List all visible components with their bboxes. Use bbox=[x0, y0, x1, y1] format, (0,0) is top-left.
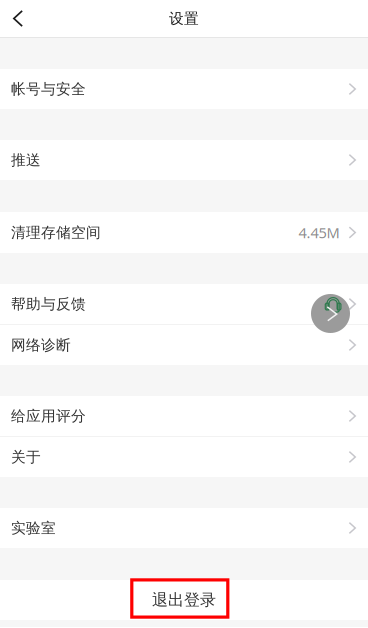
button[interactable]: 清理存储空间 bbox=[0, 212, 368, 253]
staticText: 清理存储空间 bbox=[11, 223, 101, 241]
staticText: 网络诊断 bbox=[11, 336, 71, 354]
button[interactable]: 关于 bbox=[0, 437, 368, 477]
staticText: 4.45M bbox=[299, 223, 340, 242]
button[interactable]: 退出登录 bbox=[0, 580, 368, 620]
button[interactable]: Customer support bbox=[311, 294, 350, 333]
button[interactable]: 帐号与安全 bbox=[0, 69, 368, 109]
button[interactable]: 帮助与反馈 bbox=[0, 284, 368, 324]
button[interactable]: 推送 bbox=[0, 140, 368, 180]
button[interactable]: 给应用评分 bbox=[0, 396, 368, 436]
staticText: 推送 bbox=[11, 151, 41, 169]
staticText: 设置 bbox=[169, 9, 199, 27]
staticText: 帮助与反馈 bbox=[11, 295, 86, 313]
staticText: 给应用评分 bbox=[11, 407, 86, 425]
staticText: 实验室 bbox=[11, 519, 56, 537]
button[interactable]: 实验室 bbox=[0, 508, 368, 548]
staticText: 关于 bbox=[11, 448, 41, 466]
staticText: 帐号与安全 bbox=[11, 80, 86, 98]
button[interactable]: Back bbox=[0, 0, 36, 37]
staticText: 退出登录 bbox=[152, 590, 216, 610]
button[interactable]: 网络诊断 bbox=[0, 325, 368, 365]
